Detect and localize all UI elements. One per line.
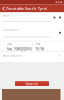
- staticText: Time: [35, 42, 41, 46]
- staticText: Timetable South Tyrol: [6, 6, 47, 11]
- button[interactable]: Time: [32, 41, 60, 51]
- button[interactable]: Timetable South Tyrol: [0, 4, 64, 12]
- staticText: Search: [25, 81, 38, 86]
- staticText: Sat, 10/02/2016: [7, 46, 32, 51]
- staticText: v: [58, 54, 59, 57]
- staticText: Destination: [3, 28, 19, 31]
- button[interactable]: Date: [4, 41, 32, 51]
- staticText: From: [3, 14, 9, 17]
- staticText: More options: [3, 54, 22, 57]
- button[interactable]: Search: [15, 81, 49, 86]
- staticText: 15:18: [35, 46, 44, 51]
- button[interactable]: More options: [0, 52, 64, 60]
- staticText: Date: [7, 42, 13, 46]
